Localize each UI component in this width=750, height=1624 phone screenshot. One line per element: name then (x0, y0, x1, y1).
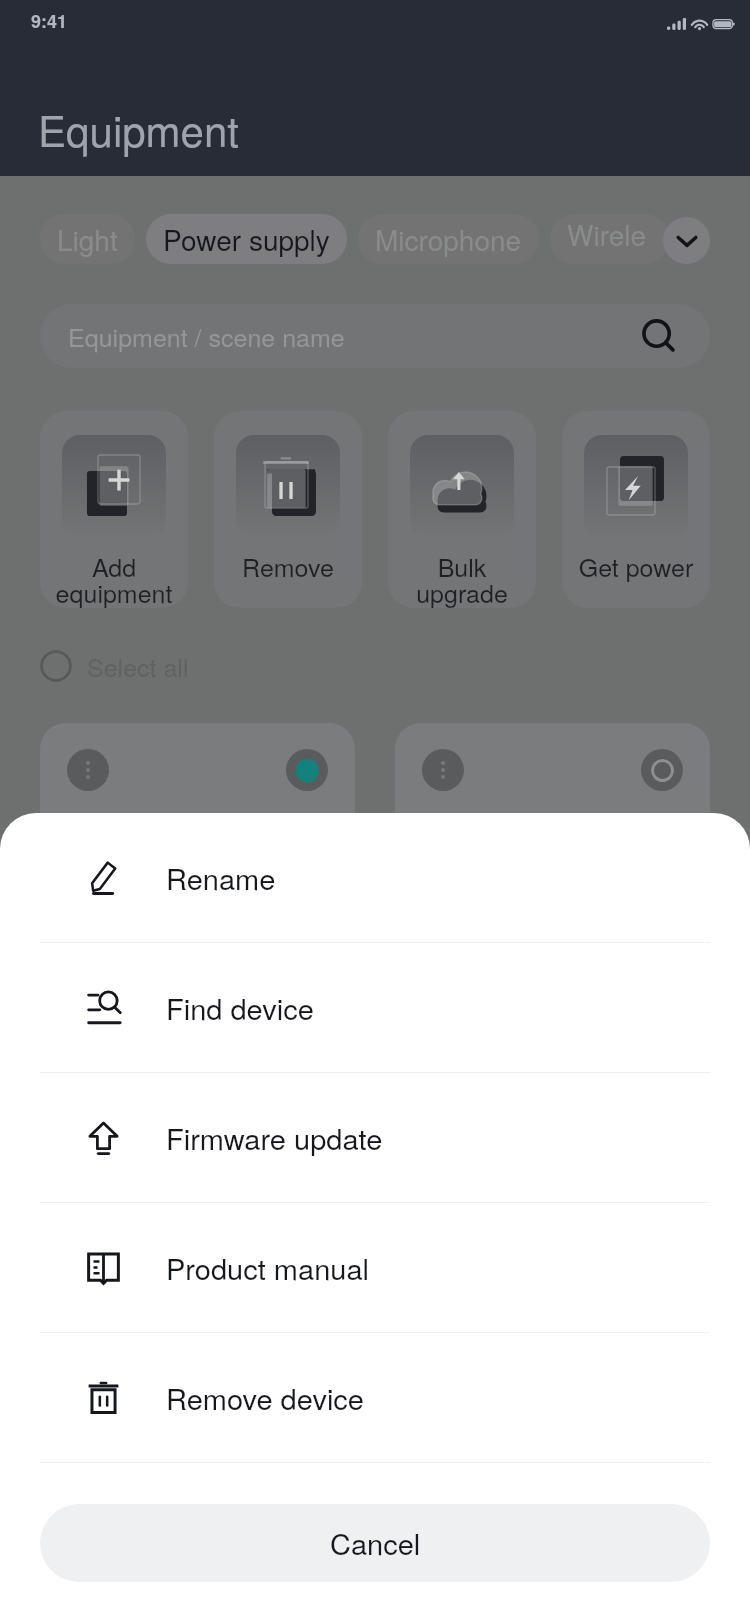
staticText: Get power (562, 548, 710, 584)
staticText: Power supply (163, 219, 330, 259)
staticText: Wireless (567, 214, 653, 264)
button[interactable]: Power supply (146, 214, 347, 264)
staticText: 9:41 (31, 8, 68, 34)
button[interactable]: Select all (40, 644, 189, 688)
staticText: Cancel (330, 1522, 421, 1564)
button[interactable]: Microphone (358, 214, 539, 264)
button[interactable]: More options (67, 749, 109, 791)
staticText: Remove (214, 548, 362, 584)
button[interactable]: Light (40, 214, 135, 264)
other: Search (643, 320, 675, 352)
button[interactable]: Power toggle (286, 749, 328, 791)
staticText: Equipment (38, 99, 239, 159)
staticText: Equipment / scene name (68, 318, 345, 354)
button[interactable]: Cancel (40, 1504, 710, 1582)
button[interactable]: More options (422, 749, 464, 791)
button[interactable]: Get power (562, 411, 710, 608)
button[interactable]: Expand filters (663, 217, 710, 264)
button[interactable]: Remove (214, 411, 362, 608)
button[interactable]: Find device (0, 943, 750, 1072)
staticText: Find device (166, 987, 314, 1029)
staticText: Light (57, 219, 118, 259)
staticText: Add equipment (40, 548, 188, 608)
staticText: Rename (166, 857, 276, 899)
button[interactable]: Bulk upgrade (388, 411, 536, 608)
staticText: Microphone (375, 219, 522, 259)
button[interactable]: Firmware update (0, 1073, 750, 1202)
staticText: Remove device (166, 1377, 364, 1419)
staticText: Firmware update (166, 1117, 383, 1159)
button[interactable]: Equipment / scene name (40, 304, 710, 368)
staticText: Product manual (166, 1247, 369, 1289)
button[interactable]: Rename (0, 813, 750, 942)
staticText: Bulk upgrade (388, 548, 536, 608)
button[interactable]: Wireless (550, 214, 670, 264)
staticText: Select all (87, 648, 189, 684)
button[interactable]: Power toggle (641, 749, 683, 791)
button[interactable]: Remove device (0, 1333, 750, 1462)
button[interactable]: Add equipment (40, 411, 188, 608)
button[interactable]: Product manual (0, 1203, 750, 1332)
